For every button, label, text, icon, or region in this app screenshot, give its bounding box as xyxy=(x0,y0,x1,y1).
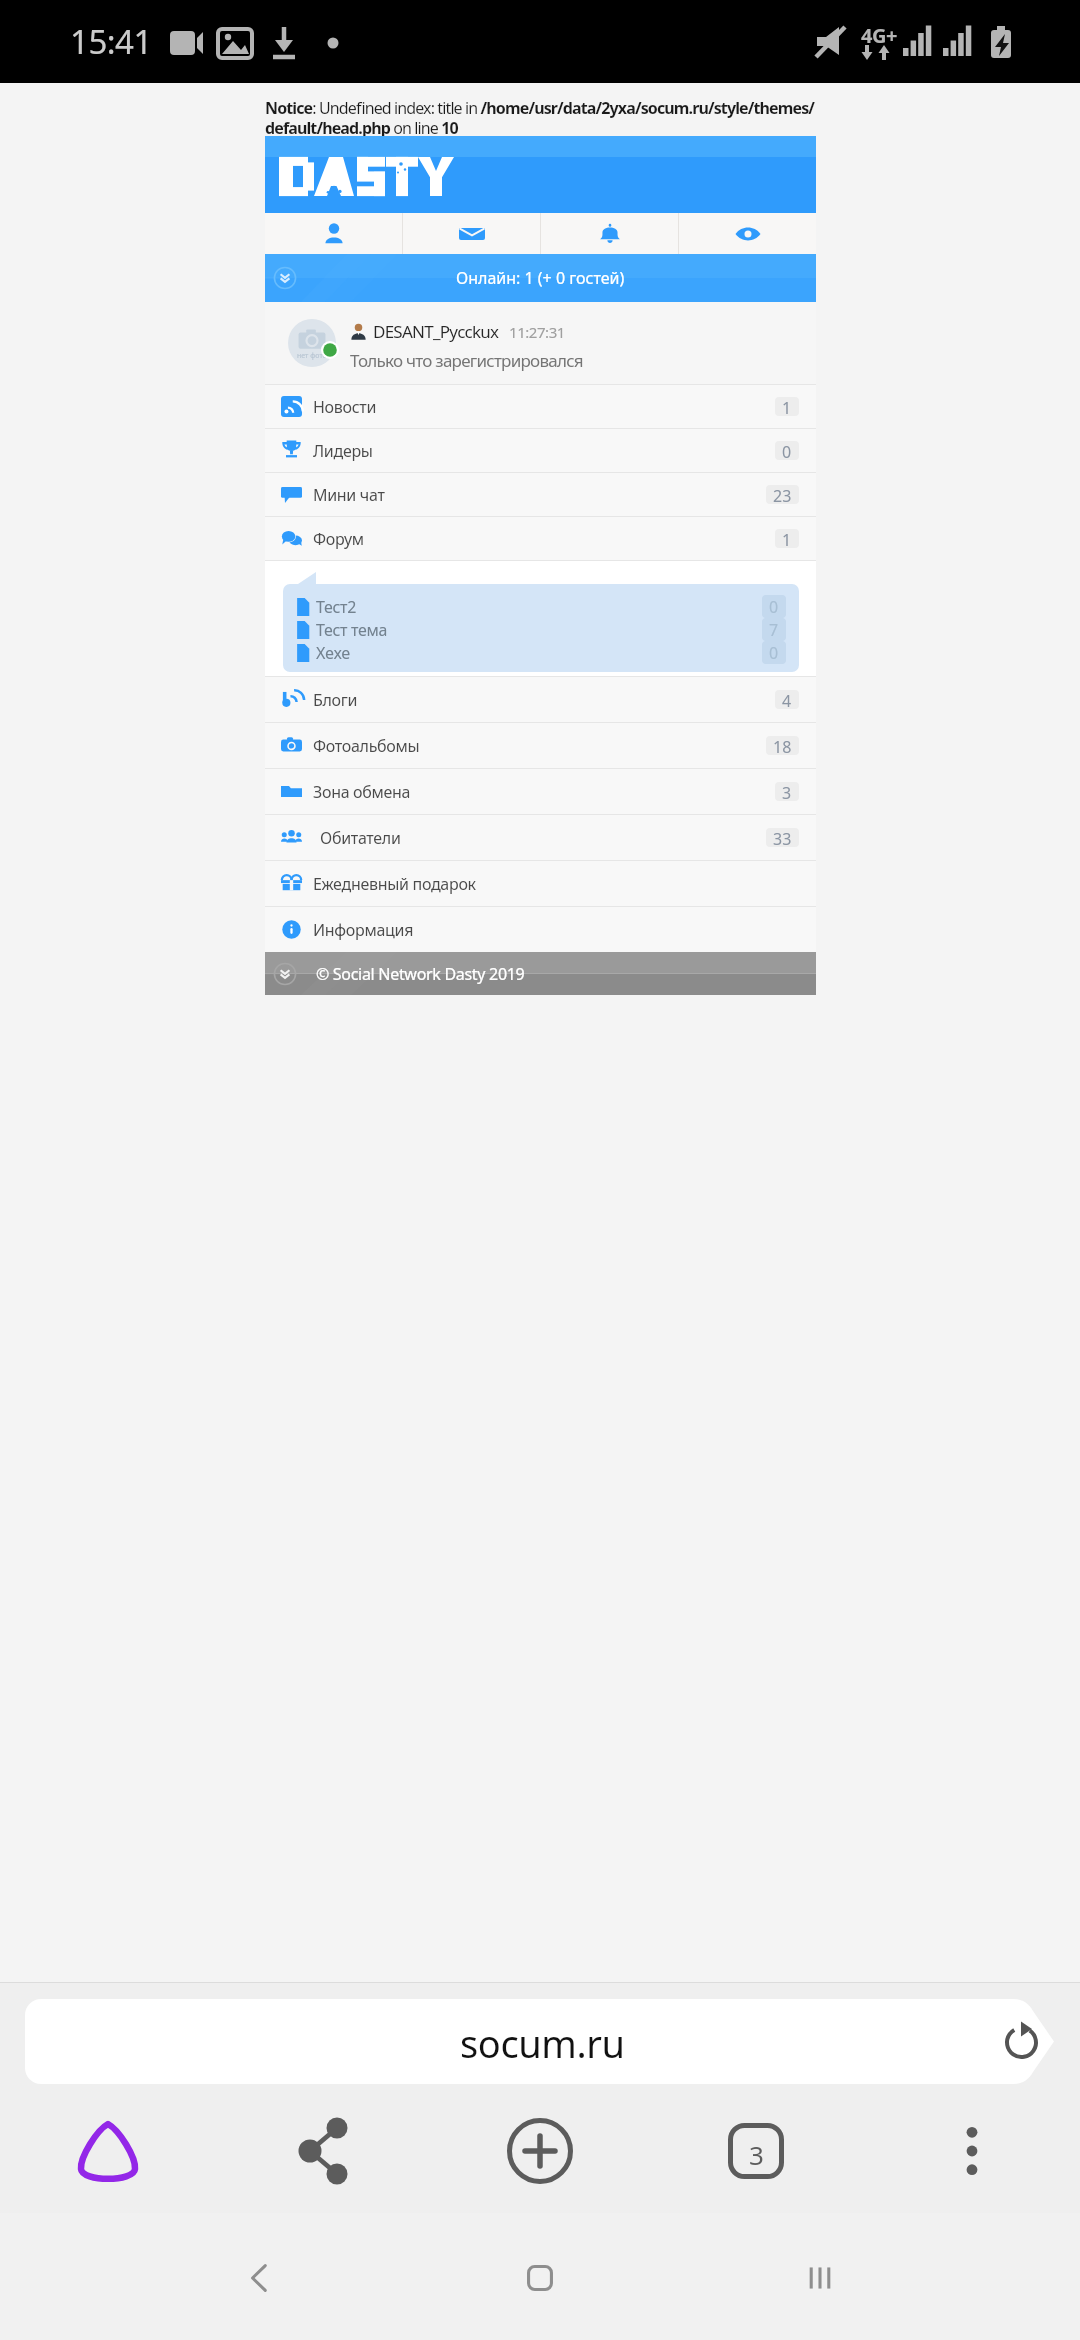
button[interactable]: Фотоальбомы xyxy=(265,723,816,768)
staticText: © Social Network Dasty 2019 xyxy=(316,963,525,985)
staticText: 1 xyxy=(782,529,792,548)
button[interactable]: Tabs: 3 open xyxy=(648,2085,864,2213)
staticText: Фотоальбомы xyxy=(313,735,420,757)
button[interactable]: Новости xyxy=(265,385,816,428)
staticText: Новости xyxy=(313,396,377,418)
button[interactable]: Лидеры xyxy=(265,429,816,472)
staticText: Ежедневный подарок xyxy=(313,873,476,895)
staticText: нет фото xyxy=(297,351,327,361)
button[interactable]: Browser xyxy=(0,2085,216,2213)
staticText: Только что зарегистрировался xyxy=(350,349,583,372)
button[interactable]: Мини чат xyxy=(265,473,816,516)
button[interactable]: Profile xyxy=(265,213,402,254)
button[interactable]: Информация xyxy=(265,907,816,952)
staticText: Лидеры xyxy=(313,440,373,462)
staticText: 0 xyxy=(769,596,779,617)
staticText: 23 xyxy=(773,485,792,504)
button[interactable]: Reload xyxy=(993,2014,1049,2070)
staticText: socum.ru xyxy=(460,2017,625,2069)
staticText: Мини чат xyxy=(313,484,385,506)
button[interactable]: Back xyxy=(215,2253,305,2303)
button[interactable]: нет фото xyxy=(265,302,816,384)
staticText: Хexe xyxy=(316,642,351,664)
staticText: Обитатели xyxy=(320,827,401,849)
button[interactable]: Обитатели xyxy=(265,815,816,860)
staticText: 11:27:31 xyxy=(509,322,565,342)
staticText: Зона обмена xyxy=(313,781,411,803)
button[interactable]: Views xyxy=(679,213,816,254)
staticText: 4G+ xyxy=(861,22,897,49)
staticText: 0 xyxy=(782,441,792,460)
button[interactable]: Тест2 xyxy=(296,595,786,618)
button[interactable]: Messages xyxy=(403,213,540,254)
staticText: 0 xyxy=(769,642,779,663)
staticText: 7 xyxy=(769,619,779,640)
button[interactable]: Блоги xyxy=(265,677,816,722)
staticText: Тест тема xyxy=(316,619,388,641)
staticText: 1 xyxy=(782,397,792,416)
staticText: 18 xyxy=(773,736,792,755)
button[interactable]: Ежедневный подарок xyxy=(265,861,816,906)
button[interactable]: © Social Network Dasty 2019 xyxy=(265,952,816,995)
button[interactable]: Home xyxy=(495,2253,585,2303)
button[interactable]: Notifications xyxy=(541,213,678,254)
staticText: Онлайн: 1 (+ 0 гостей) xyxy=(456,267,625,289)
staticText: 33 xyxy=(773,828,792,847)
staticText: Тест2 xyxy=(316,596,357,618)
button[interactable]: New tab xyxy=(432,2085,648,2213)
staticText: 4 xyxy=(782,690,792,709)
staticText: Форум xyxy=(313,528,364,550)
button[interactable]: Форум xyxy=(265,517,816,560)
button[interactable]: Хexe xyxy=(296,641,786,664)
button[interactable]: Зона обмена xyxy=(265,769,816,814)
button[interactable]: Тест тема xyxy=(296,618,786,641)
button[interactable]: Онлайн: 1 (+ 0 гостей) xyxy=(265,254,816,302)
button[interactable]: More xyxy=(864,2085,1080,2213)
staticText: 3 xyxy=(782,782,792,801)
staticText: 3 xyxy=(749,2137,764,2172)
staticText: DESANT_Pycckux xyxy=(373,320,499,343)
staticText: Notice: Undefined index: title in /home/… xyxy=(265,97,817,138)
staticText: Блоги xyxy=(313,689,358,711)
button[interactable]: Recent apps xyxy=(775,2253,865,2303)
staticText: Информация xyxy=(313,919,414,941)
staticText: 15:41 xyxy=(70,19,152,64)
button[interactable]: Share xyxy=(216,2085,432,2213)
